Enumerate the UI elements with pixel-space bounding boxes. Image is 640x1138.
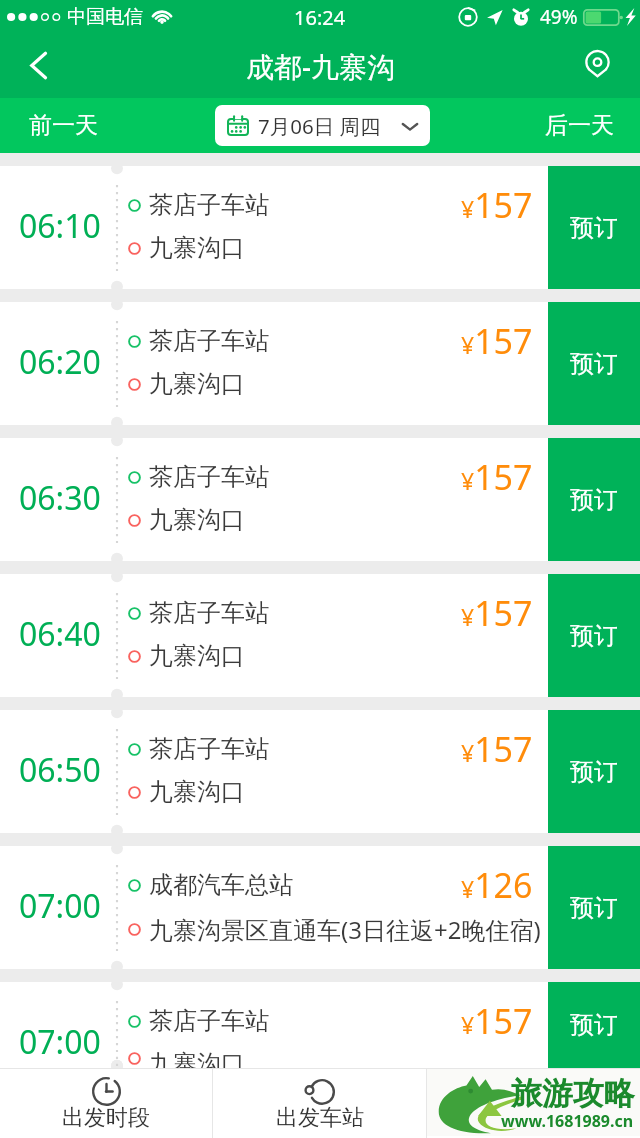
- staticText: 预订: [570, 621, 618, 651]
- staticText: 预订: [570, 349, 618, 379]
- staticText: 06:50: [19, 748, 101, 792]
- staticText: 06:10: [19, 204, 101, 248]
- staticText: 九寨沟口: [149, 641, 245, 671]
- staticText: 07:00: [19, 884, 101, 928]
- staticText: 07:00: [19, 1020, 101, 1064]
- staticText: 九寨沟口: [149, 505, 245, 535]
- button[interactable]: 07:00: [0, 982, 640, 1068]
- staticText: ¥157: [461, 590, 533, 636]
- staticText: 06:40: [19, 612, 101, 656]
- button[interactable]: Location: [566, 34, 628, 96]
- button[interactable]: 预订: [548, 166, 640, 289]
- button[interactable]: 出发车站: [213, 1069, 426, 1138]
- button[interactable]: 7月06日 周四: [215, 105, 430, 146]
- button[interactable]: 预订: [548, 574, 640, 697]
- button[interactable]: 预订: [548, 710, 640, 833]
- staticText: www.1681989.cn: [501, 1110, 634, 1132]
- staticText: 06:20: [19, 340, 101, 384]
- staticText: ¥157: [461, 454, 533, 500]
- staticText: 九寨沟口: [149, 1049, 245, 1068]
- button[interactable]: 预订: [548, 438, 640, 561]
- staticText: 九寨沟口: [149, 233, 245, 263]
- staticText: 预订: [570, 757, 618, 787]
- button[interactable]: 06:20: [0, 302, 640, 425]
- staticText: 出发时段: [62, 1104, 150, 1132]
- staticText: 茶店子车站: [149, 462, 269, 492]
- staticText: ¥157: [461, 998, 533, 1044]
- button[interactable]: 旅游攻略: [427, 1069, 640, 1138]
- staticText: 九寨沟口: [149, 777, 245, 807]
- staticText: 预订: [570, 1010, 618, 1040]
- button[interactable]: 06:10: [0, 166, 640, 289]
- staticText: 06:30: [19, 476, 101, 520]
- staticText: 预订: [570, 213, 618, 243]
- staticText: 茶店子车站: [149, 190, 269, 220]
- staticText: 后一天: [545, 111, 614, 140]
- button[interactable]: 后一天: [525, 98, 640, 153]
- staticText: 九寨沟景区直通车(3日往返+2晚住宿): [149, 913, 541, 946]
- staticText: 中国电信: [67, 5, 143, 29]
- staticText: 出发车站: [276, 1104, 364, 1132]
- button[interactable]: 前一天: [0, 98, 118, 153]
- staticText: ¥126: [461, 862, 533, 908]
- staticText: 16:24: [294, 4, 346, 31]
- button[interactable]: 07:00: [0, 846, 640, 969]
- staticText: 49%: [540, 4, 578, 30]
- button[interactable]: 预订: [548, 302, 640, 425]
- staticText: 茶店子车站: [149, 734, 269, 764]
- button[interactable]: 预订: [548, 982, 640, 1068]
- button[interactable]: Back: [7, 34, 69, 96]
- staticText: 茶店子车站: [149, 326, 269, 356]
- button[interactable]: 06:30: [0, 438, 640, 561]
- staticText: 预订: [570, 485, 618, 515]
- button[interactable]: 出发时段: [0, 1069, 212, 1138]
- staticText: 茶店子车站: [149, 1006, 269, 1036]
- staticText: 成都汽车总站: [149, 870, 293, 900]
- staticText: 茶店子车站: [149, 598, 269, 628]
- staticText: 九寨沟口: [149, 369, 245, 399]
- staticText: ¥157: [461, 318, 533, 364]
- staticText: ¥157: [461, 726, 533, 772]
- staticText: 7月06日 周四: [258, 112, 381, 140]
- button[interactable]: 预订: [548, 846, 640, 969]
- staticText: 成都-九寨沟: [246, 47, 395, 85]
- staticText: 前一天: [29, 111, 98, 140]
- staticText: 旅游攻略: [511, 1074, 635, 1113]
- staticText: 预订: [570, 893, 618, 923]
- staticText: ¥157: [461, 182, 533, 228]
- button[interactable]: 06:50: [0, 710, 640, 833]
- button[interactable]: 06:40: [0, 574, 640, 697]
